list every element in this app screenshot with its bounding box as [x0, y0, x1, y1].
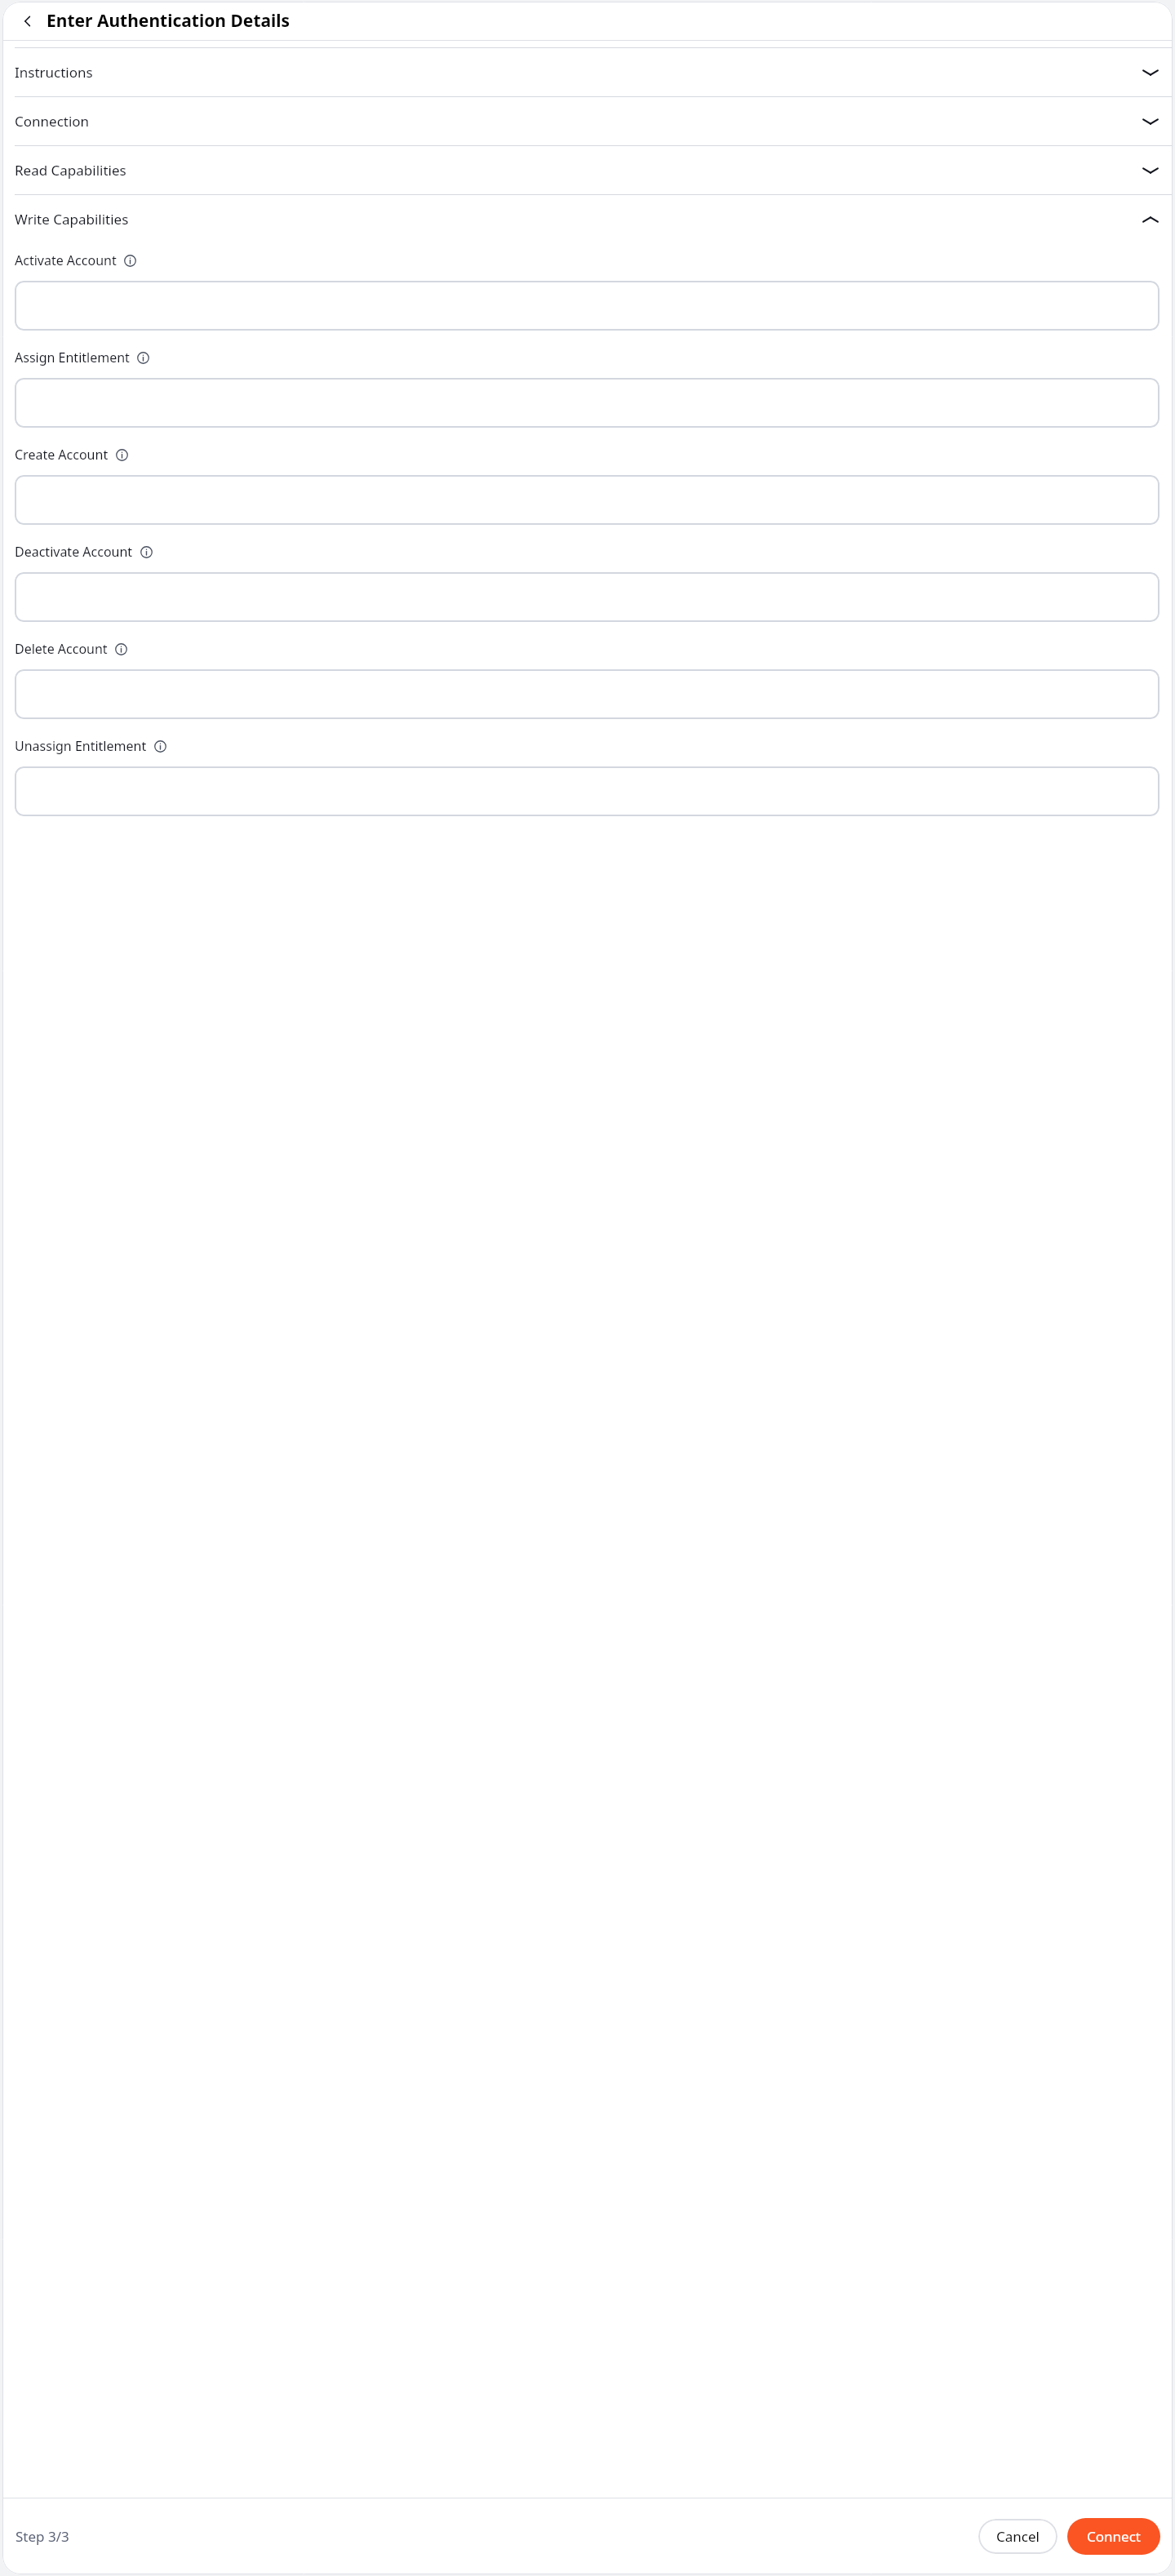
button[interactable]: Delete Account input field	[15, 669, 1159, 719]
button[interactable]: Activate Account input field	[15, 281, 1159, 331]
staticText: Activate Account	[15, 251, 117, 269]
button[interactable]: More info about Unassign Entitlement	[154, 740, 166, 753]
staticText: Assign Entitlement	[15, 349, 130, 366]
button[interactable]: Unassign Entitlement input field	[15, 766, 1159, 816]
button[interactable]: Create Account input field	[15, 475, 1159, 525]
staticText: Step 3/3	[16, 2527, 69, 2546]
button[interactable]: Assign Entitlement input field	[15, 378, 1159, 428]
staticText: Delete Account	[15, 640, 108, 658]
button[interactable]: More info about Deactivate Account	[140, 546, 153, 558]
staticText: Enter Authentication Details	[47, 9, 290, 33]
button[interactable]: Connect	[1067, 2518, 1160, 2555]
staticText: Write Capabilities	[15, 210, 129, 229]
button[interactable]: More info about Assign Entitlement	[137, 352, 149, 364]
button[interactable]: Cancel	[978, 2519, 1057, 2554]
staticText: Read Capabilities	[15, 161, 126, 180]
button[interactable]: Connection	[2, 96, 1173, 145]
button[interactable]: Instructions	[2, 47, 1173, 96]
button[interactable]: Back	[16, 9, 40, 33]
staticText: Create Account	[15, 446, 109, 464]
staticText: Instructions	[15, 63, 93, 82]
button[interactable]: More info about Create Account	[116, 449, 128, 461]
staticText: Cancel	[996, 2527, 1040, 2546]
staticText: Unassign Entitlement	[15, 737, 147, 755]
button[interactable]: Read Capabilities	[2, 145, 1173, 194]
button[interactable]: Deactivate Account input field	[15, 572, 1159, 622]
button[interactable]: More info about Activate Account	[124, 255, 136, 267]
staticText: Deactivate Account	[15, 543, 133, 561]
staticText: Connect	[1087, 2527, 1141, 2546]
button[interactable]: Write Capabilities	[2, 194, 1173, 243]
staticText: Connection	[15, 112, 90, 131]
button[interactable]: More info about Delete Account	[115, 643, 127, 655]
